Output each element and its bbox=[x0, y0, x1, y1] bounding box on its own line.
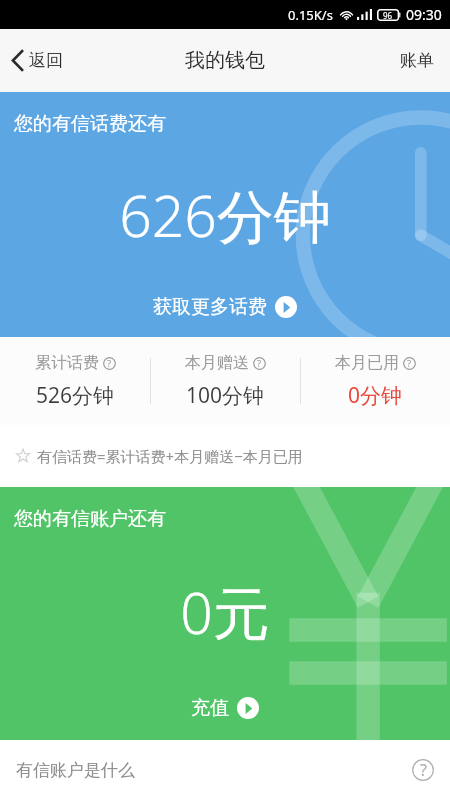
staticText: 0.15K/s bbox=[288, 6, 333, 24]
staticText: 有信话费=累计话费+本月赠送−本月已用 bbox=[37, 446, 303, 466]
staticText: 返回 bbox=[29, 50, 63, 71]
button[interactable]: 返回 bbox=[0, 40, 77, 81]
staticText: 96 bbox=[383, 10, 393, 21]
staticText: 有信账户是什么 bbox=[16, 760, 135, 781]
staticText: 0元 bbox=[180, 573, 270, 651]
staticText: 账单 bbox=[400, 50, 434, 71]
other: 帮助 bbox=[403, 357, 416, 370]
staticText: 我的钱包 bbox=[185, 48, 265, 73]
staticText: 本月赠送 bbox=[185, 353, 249, 373]
staticText: ? bbox=[257, 357, 262, 370]
staticText: ? bbox=[107, 357, 112, 370]
staticText: ? bbox=[420, 759, 427, 781]
button[interactable]: 获取更多话费 bbox=[143, 291, 307, 323]
button[interactable]: 累计话费 bbox=[0, 345, 150, 418]
staticText: 您的有信账户还有 bbox=[14, 507, 166, 531]
button[interactable]: 本月已用 bbox=[301, 345, 450, 418]
button[interactable]: 账单 bbox=[384, 38, 450, 83]
staticText: 09:30 bbox=[406, 5, 442, 24]
button[interactable]: 本月赠送 bbox=[151, 345, 300, 418]
staticText: 526分钟 bbox=[36, 381, 115, 410]
staticText: 0分钟 bbox=[348, 381, 403, 410]
staticText: 100分钟 bbox=[186, 381, 265, 410]
other: 帮助 bbox=[412, 759, 434, 781]
staticText: 626分钟 bbox=[119, 176, 331, 254]
other: 帮助 bbox=[253, 357, 266, 370]
staticText: 累计话费 bbox=[35, 353, 99, 373]
button[interactable]: 充值 bbox=[181, 692, 269, 724]
staticText: 您的有信话费还有 bbox=[14, 112, 166, 136]
button[interactable]: 有信账户是什么 bbox=[0, 740, 450, 800]
staticText: 本月已用 bbox=[335, 353, 399, 373]
staticText: 获取更多话费 bbox=[153, 295, 267, 319]
staticText: ? bbox=[407, 357, 412, 370]
other: 帮助 bbox=[103, 357, 116, 370]
staticText: 充值 bbox=[191, 696, 229, 720]
